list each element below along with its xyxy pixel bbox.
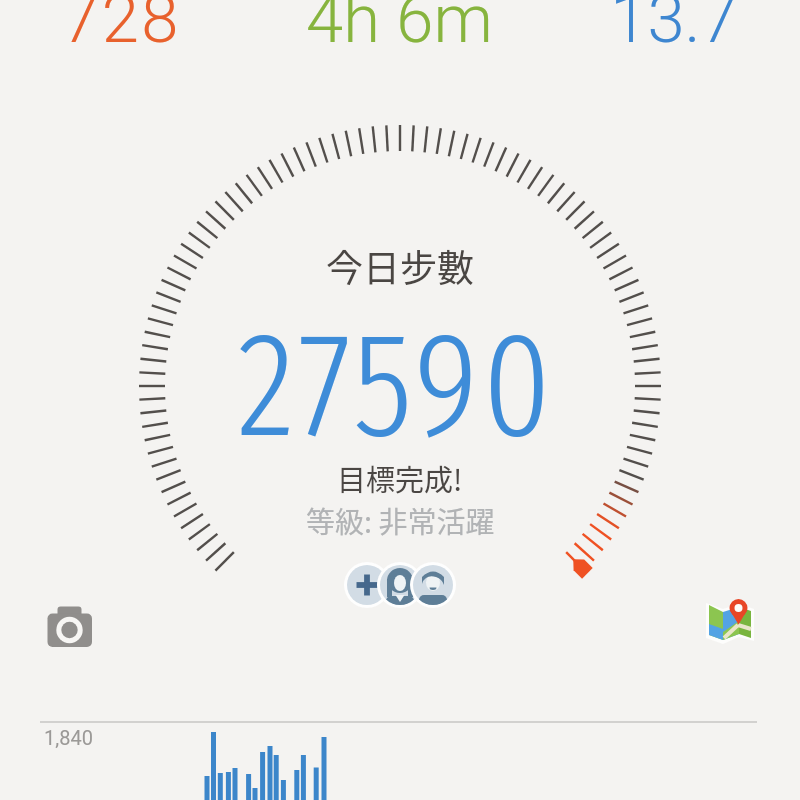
staticText: 728 xyxy=(62,0,181,59)
staticText: 4h 6m xyxy=(306,0,493,59)
button[interactable]: 728 xyxy=(11,0,231,59)
button[interactable] xyxy=(698,588,762,650)
staticText: 今日步數 xyxy=(326,239,474,293)
staticText: 13.7 xyxy=(610,0,738,59)
button[interactable]: 13.7 xyxy=(564,0,784,59)
staticText: 27590 xyxy=(238,298,556,474)
button[interactable] xyxy=(40,598,100,654)
staticText: 等級: 非常活躍 xyxy=(306,499,495,541)
button[interactable]: 4h 6m xyxy=(289,0,509,59)
staticText: 1,840 xyxy=(44,726,93,749)
staticText: 目標完成! xyxy=(337,457,463,499)
button[interactable] xyxy=(344,562,456,608)
